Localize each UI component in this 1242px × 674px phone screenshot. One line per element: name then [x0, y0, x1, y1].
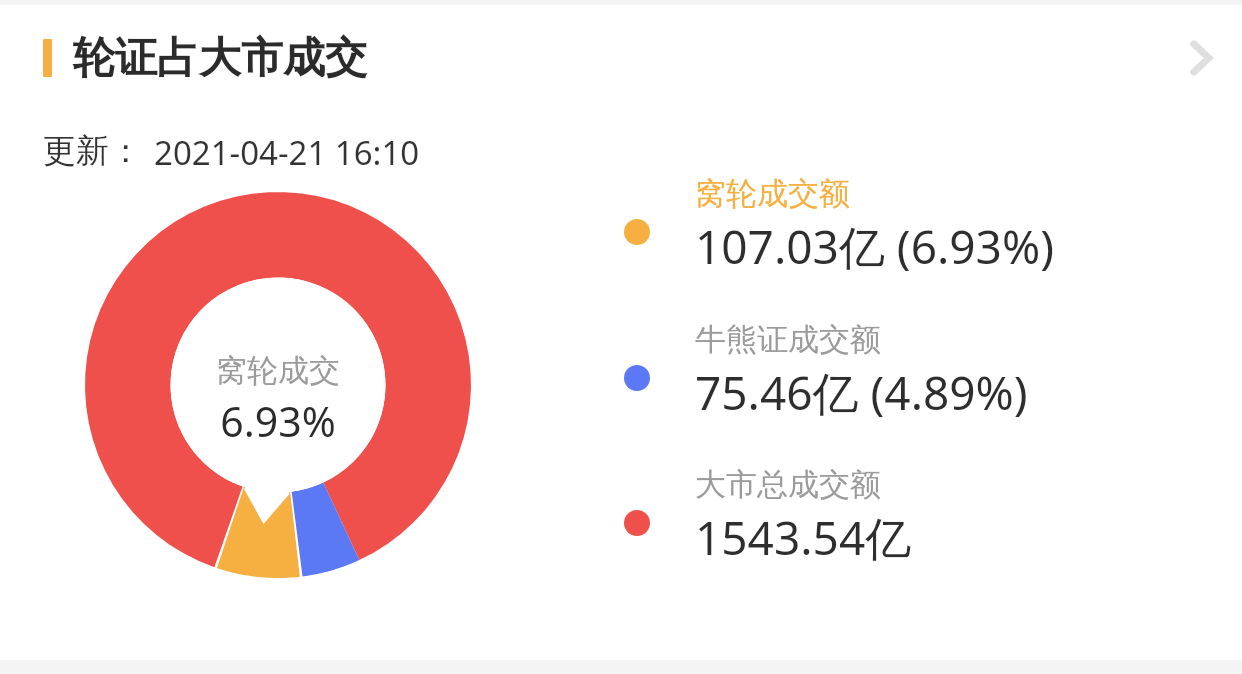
- staticText: 2021-04-21 16:10: [154, 130, 420, 175]
- staticText: 107.03亿 (6.93%): [695, 215, 1054, 278]
- button[interactable]: 牛熊证成交额: [600, 316, 1180, 440]
- button[interactable]: 窝轮成交额: [600, 170, 1180, 294]
- staticText: 更新：: [43, 130, 142, 172]
- staticText: 轮证占大市成交: [73, 32, 367, 85]
- staticText: 大市总成交额: [695, 465, 881, 504]
- button[interactable]: 大市总成交额: [600, 461, 1180, 585]
- button[interactable]: 轮证占大市成交: [0, 6, 1242, 110]
- staticText: 1543.54亿: [695, 506, 912, 569]
- other: 查看详情: [1158, 16, 1242, 100]
- staticText: 窝轮成交额: [695, 174, 850, 213]
- staticText: 6.93%: [220, 393, 336, 449]
- staticText: 牛熊证成交额: [695, 320, 881, 359]
- staticText: 窝轮成交: [216, 351, 340, 390]
- staticText: 75.46亿 (4.89%): [695, 361, 1028, 424]
